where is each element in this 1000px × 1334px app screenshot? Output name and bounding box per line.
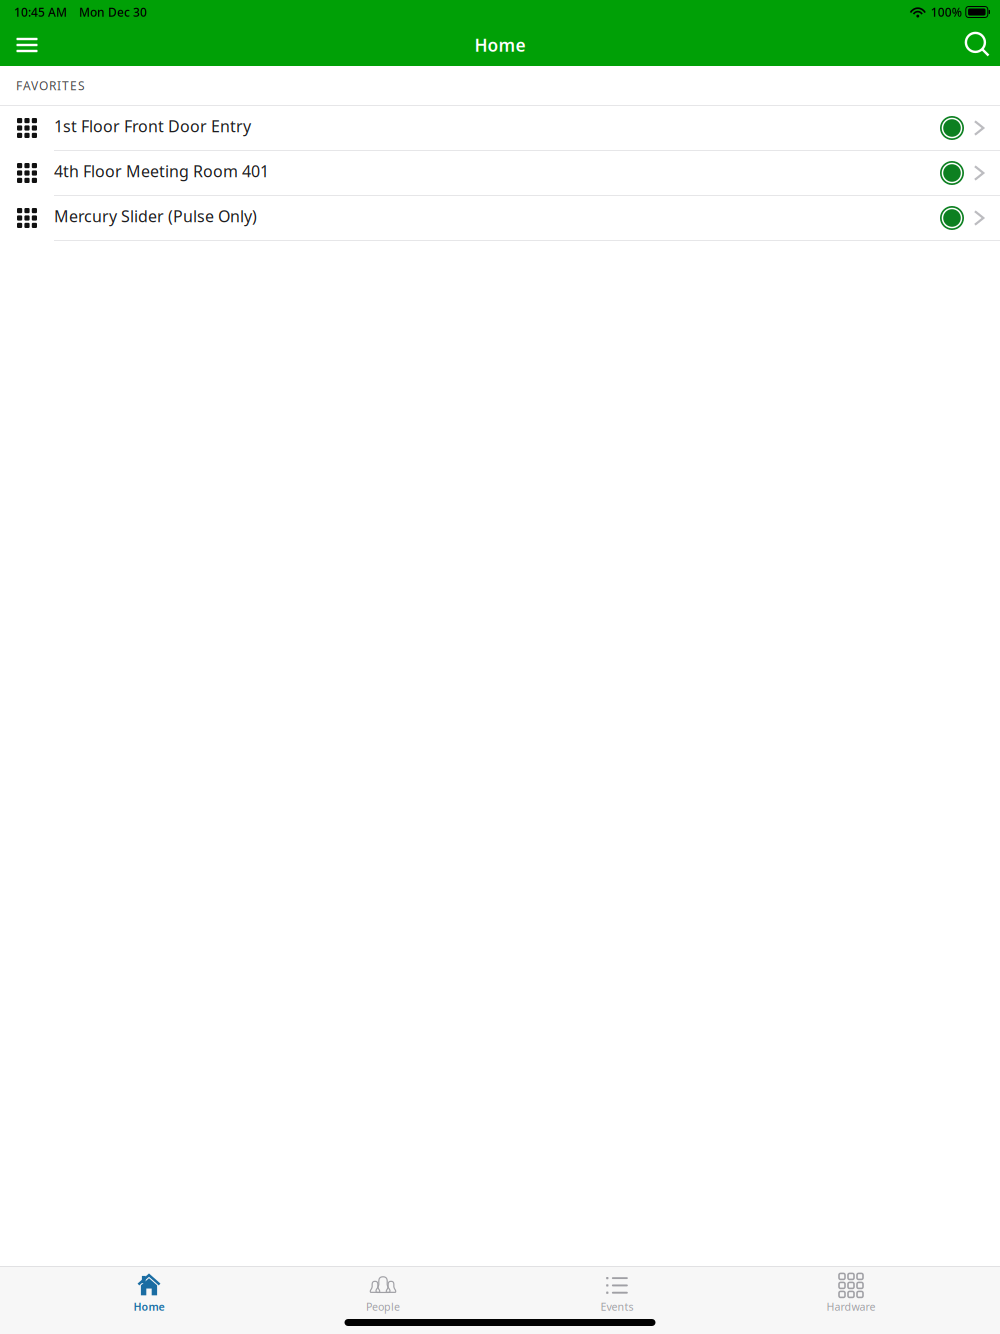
button[interactable]: Search bbox=[957, 24, 999, 66]
button[interactable]: Menu bbox=[6, 24, 48, 66]
staticText: Mercury Slider (Pulse Only) bbox=[54, 205, 257, 227]
button[interactable]: 1st Floor Front Door Entry bbox=[0, 106, 1000, 151]
button[interactable]: People bbox=[266, 1267, 500, 1317]
button[interactable]: 4th Floor Meeting Room 401 bbox=[0, 151, 1000, 196]
button[interactable]: Home bbox=[32, 1267, 266, 1317]
staticText: 1st Floor Front Door Entry bbox=[54, 115, 251, 137]
button[interactable]: Events bbox=[500, 1267, 734, 1317]
staticText: People bbox=[366, 1299, 400, 1314]
staticText: FAVORITES bbox=[16, 77, 85, 93]
staticText: Home bbox=[474, 33, 525, 56]
staticText: Hardware bbox=[826, 1299, 875, 1314]
staticText: Mon Dec 30 bbox=[79, 4, 147, 20]
staticText: Events bbox=[600, 1299, 633, 1314]
button[interactable]: Mercury Slider (Pulse Only) bbox=[0, 196, 1000, 241]
staticText: 10:45 AM bbox=[14, 4, 67, 20]
button[interactable]: Hardware bbox=[734, 1267, 968, 1317]
staticText: 4th Floor Meeting Room 401 bbox=[54, 160, 269, 182]
staticText: Home bbox=[133, 1299, 164, 1314]
staticText: 100% bbox=[931, 4, 962, 20]
